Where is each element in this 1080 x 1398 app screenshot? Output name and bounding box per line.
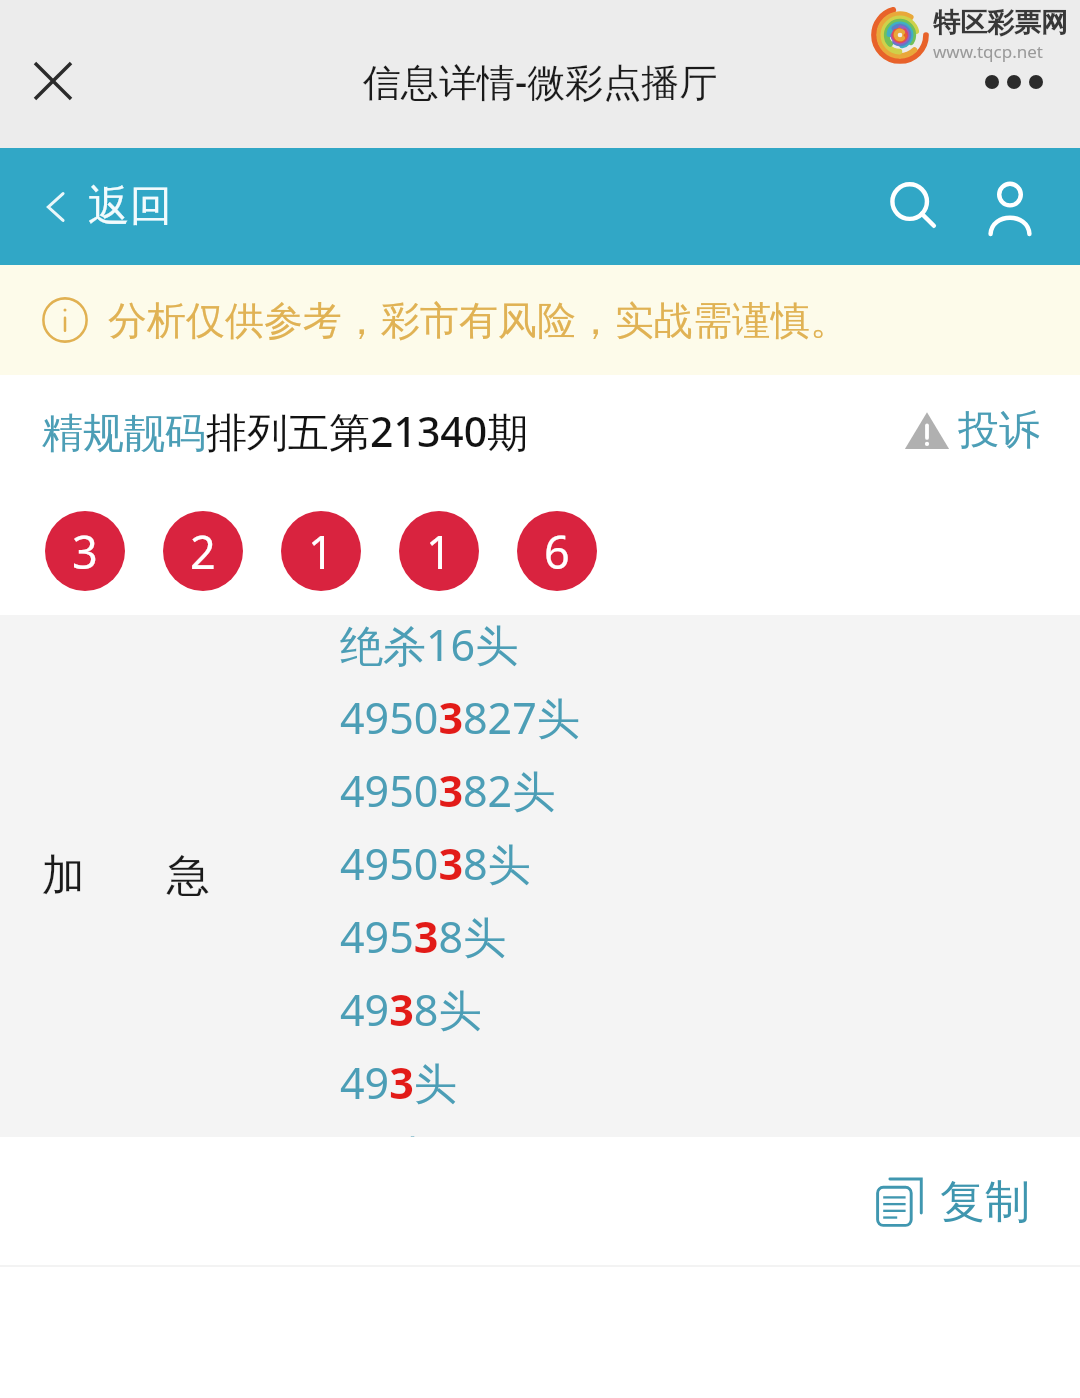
staticText: www.tqcp.net xyxy=(933,40,1043,63)
staticText: 2 xyxy=(190,521,216,582)
staticText: 投诉 xyxy=(958,405,1040,457)
staticText: 3 xyxy=(72,521,98,582)
staticText: 特区彩票网 xyxy=(933,6,1068,40)
staticText: 4938头 xyxy=(340,980,482,1039)
button[interactable]: Close xyxy=(14,42,92,120)
staticText: 返回 xyxy=(88,180,172,233)
staticText: 49头 xyxy=(340,1126,433,1137)
staticText: 495038头 xyxy=(340,834,531,893)
staticText: 绝杀16头 xyxy=(340,615,519,674)
staticText: 49538头 xyxy=(340,907,506,966)
staticText: 分析仅供参考，彩市有风险，实战需谨慎。 xyxy=(108,296,849,345)
button[interactable]: 复制 xyxy=(864,1164,1038,1241)
staticText: 6 xyxy=(544,521,570,582)
staticText: 1 xyxy=(426,521,452,582)
staticText: 精规靓码排列五第21340期 xyxy=(42,403,529,459)
staticText: 复制 xyxy=(940,1174,1030,1231)
staticText: 4950382头 xyxy=(340,761,556,820)
button[interactable]: 投诉 xyxy=(898,395,1046,467)
staticText: 1 xyxy=(308,521,334,582)
staticText: 急 xyxy=(167,849,210,903)
staticText: 加 xyxy=(42,849,85,903)
staticText: 信息详情-微彩点播厅 xyxy=(363,55,718,107)
staticText: 49503827头 xyxy=(340,688,580,747)
staticText: 493头 xyxy=(340,1053,457,1112)
button[interactable]: More options xyxy=(970,50,1058,114)
button[interactable]: Search xyxy=(868,161,960,253)
button[interactable]: 返回 xyxy=(32,164,180,249)
button[interactable]: Account xyxy=(964,161,1056,253)
